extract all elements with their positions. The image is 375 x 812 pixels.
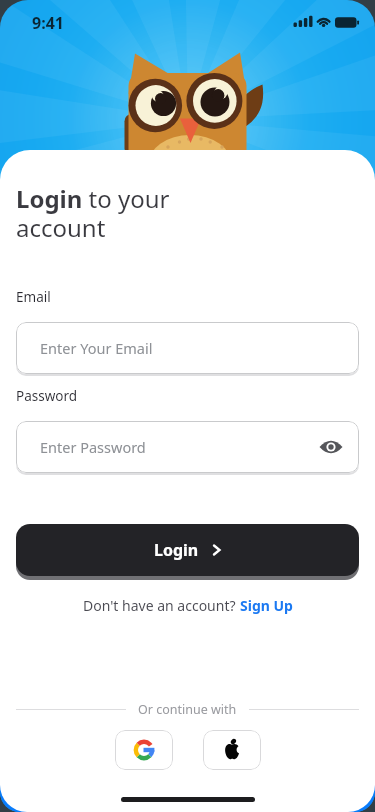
staticText: Login [154, 539, 199, 561]
staticText: Enter Password [40, 437, 146, 457]
button[interactable] [203, 730, 261, 770]
button[interactable]: Enter Your Email [16, 322, 359, 374]
button[interactable]: Enter Password [16, 421, 359, 473]
staticText: Login to your account [16, 182, 170, 244]
staticText: 9:41 [32, 12, 64, 34]
button[interactable]: Sign Up [240, 596, 293, 615]
button[interactable]: Login [16, 524, 359, 576]
staticText: Email [16, 288, 51, 306]
staticText: Don't have an account? [83, 596, 240, 615]
button[interactable] [115, 730, 173, 770]
staticText: Or continue with [138, 701, 237, 718]
staticText: Password [16, 387, 78, 405]
staticText: Enter Your Email [40, 338, 153, 358]
